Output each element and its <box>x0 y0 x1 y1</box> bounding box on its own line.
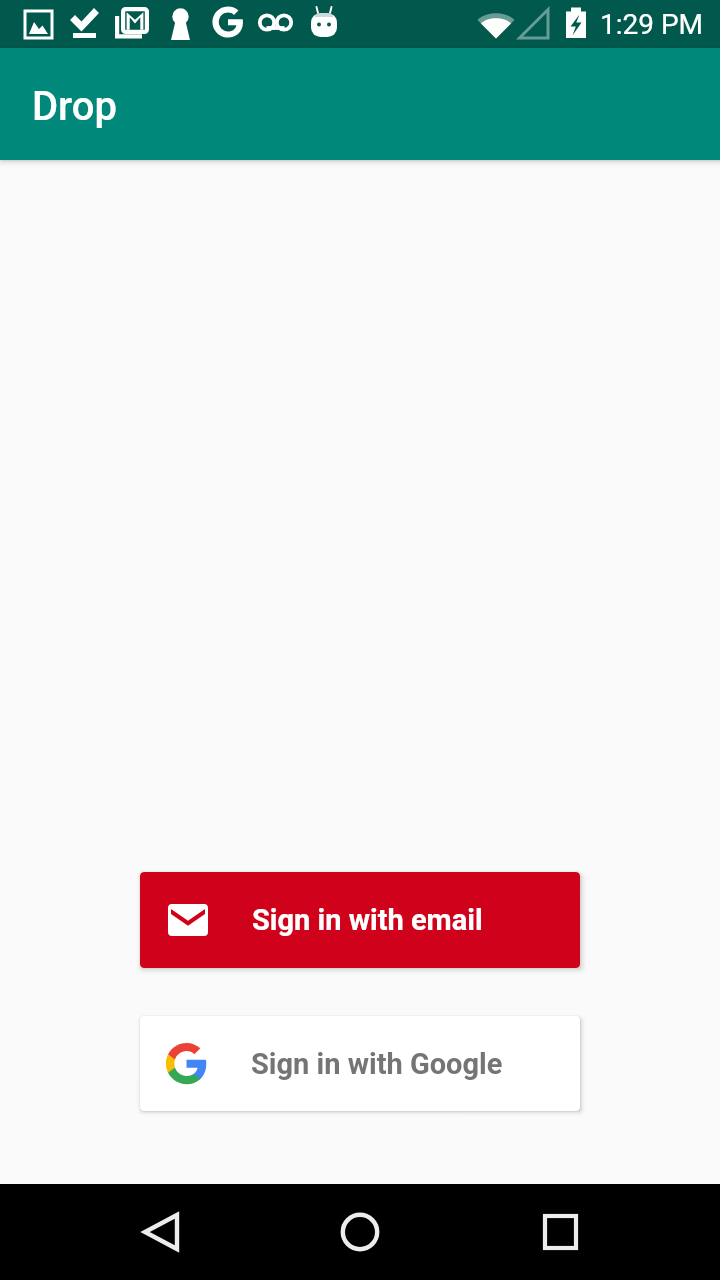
button[interactable]: Home <box>312 1184 408 1280</box>
button[interactable]: Sign in with Google <box>140 1016 580 1111</box>
staticText: Sign in with email <box>252 903 483 937</box>
button[interactable]: Sign in with email <box>140 872 580 968</box>
button[interactable]: Back <box>113 1184 209 1280</box>
staticText: Sign in with Google <box>251 1047 503 1081</box>
staticText: Drop <box>32 83 117 130</box>
button[interactable]: Recents <box>513 1184 609 1280</box>
staticText: 1:29 PM <box>600 8 704 41</box>
